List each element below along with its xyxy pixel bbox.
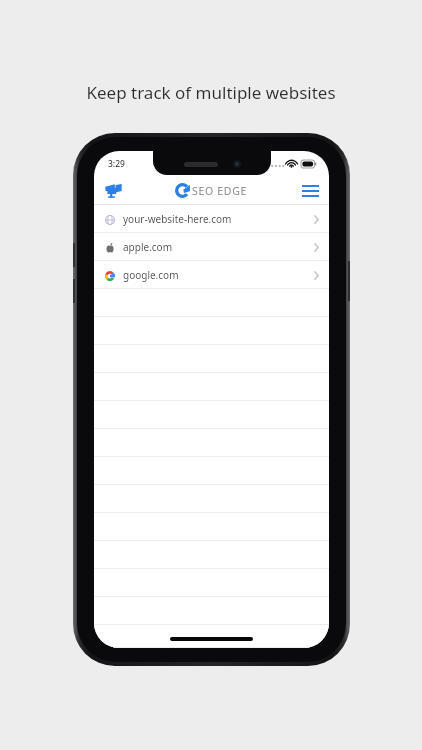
staticText: apple.com	[123, 240, 173, 254]
button[interactable]: SEO EDGE	[175, 183, 248, 198]
button[interactable]: Menu	[297, 178, 323, 204]
staticText: google.com	[123, 268, 179, 282]
staticText: Keep track of multiple websites	[86, 81, 336, 104]
button[interactable]: apple.com	[94, 233, 329, 261]
staticText: your-website-here.com	[123, 212, 232, 226]
button[interactable]: your-website-here.com	[94, 205, 329, 233]
button[interactable]: google.com	[94, 261, 329, 289]
button[interactable]: Announcements	[100, 178, 126, 204]
staticText: SEO EDGE	[192, 184, 248, 198]
staticText: 3:29	[108, 158, 125, 170]
